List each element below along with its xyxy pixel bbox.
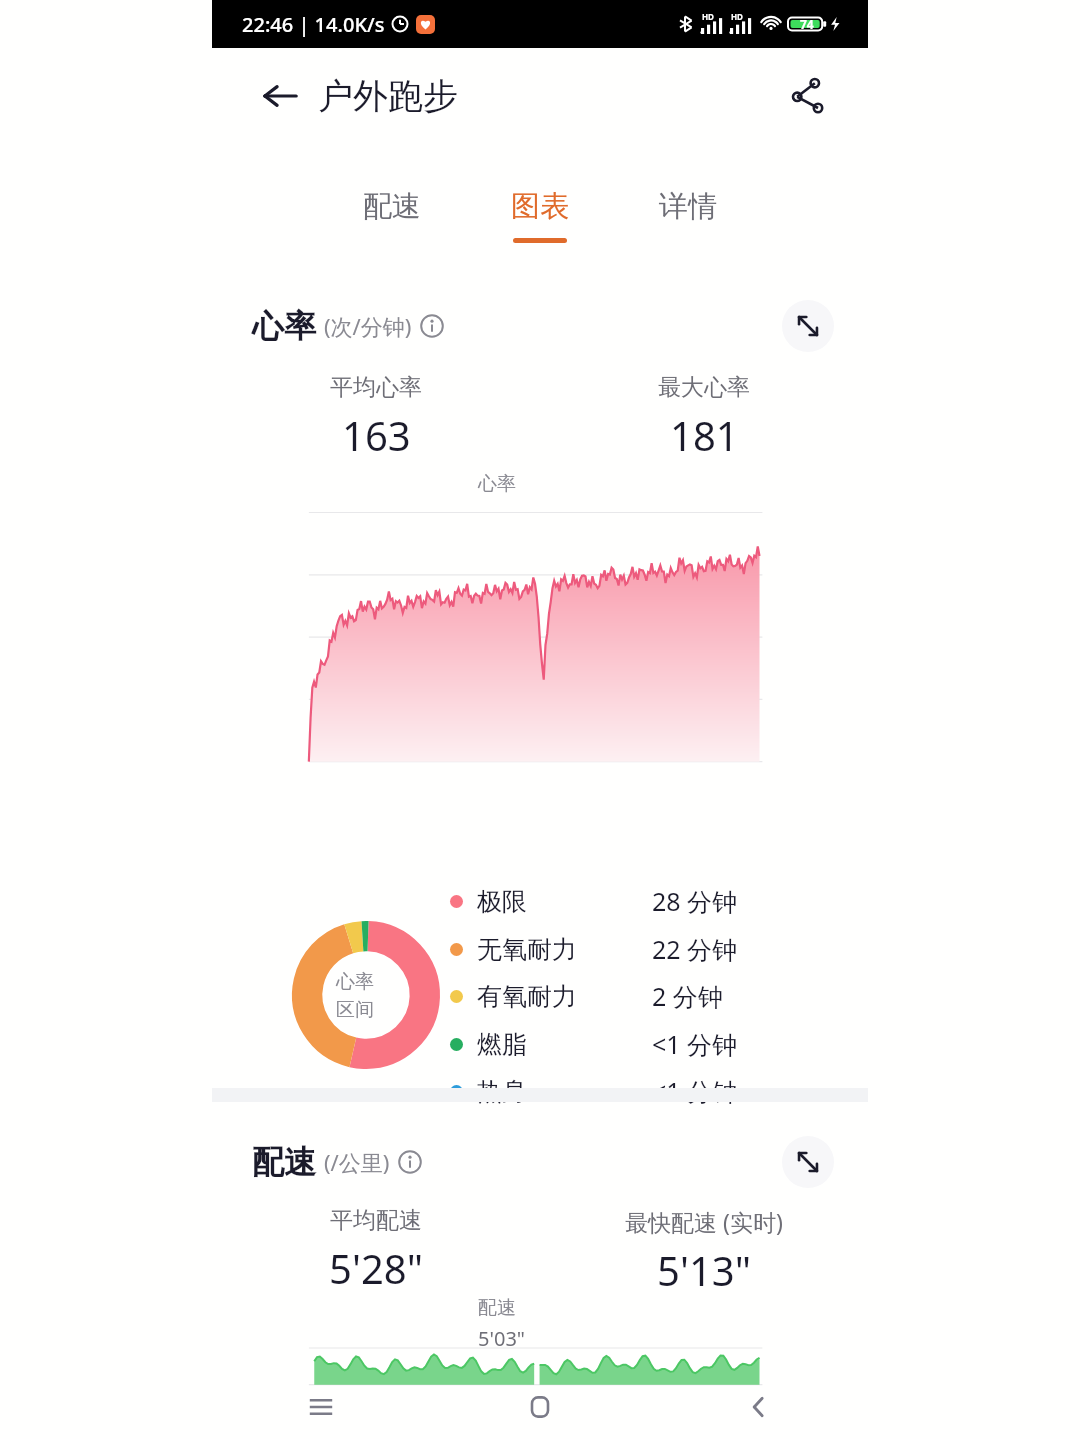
staticText: 热身 xyxy=(477,1076,527,1107)
staticText: 5'03" xyxy=(478,1325,525,1352)
button[interactable]: Expand chart xyxy=(782,300,834,352)
staticText: 22:46 | 14.0K/s xyxy=(242,11,385,38)
staticText: 区间 xyxy=(336,998,374,1022)
staticText: 配速 xyxy=(252,1142,316,1182)
button[interactable]: 有氧耐力 xyxy=(450,976,770,1016)
staticText: 户外跑步 xyxy=(318,74,458,118)
staticText: 22 分钟 xyxy=(652,932,738,966)
button[interactable]: Home xyxy=(430,1375,649,1439)
staticText: HD xyxy=(702,11,714,22)
staticText: HD xyxy=(731,11,743,22)
button[interactable]: 配速 xyxy=(337,188,447,238)
staticText: 心率 xyxy=(336,970,374,994)
button[interactable]: 热身 xyxy=(450,1071,770,1111)
staticText: 2 分钟 xyxy=(652,979,723,1013)
staticText: 28 分钟 xyxy=(652,884,738,918)
staticText: 心率 xyxy=(478,472,516,496)
staticText: <1 分钟 xyxy=(652,1074,738,1108)
button[interactable]: Back xyxy=(256,72,304,120)
button[interactable]: 燃脂 xyxy=(450,1024,770,1064)
staticText: 5'28" xyxy=(329,1241,423,1295)
staticText: 181 xyxy=(670,408,739,462)
button[interactable]: Expand chart xyxy=(782,1136,834,1188)
staticText: 平均心率 xyxy=(330,373,422,402)
button[interactable]: 详情 xyxy=(633,188,743,238)
staticText: <1 分钟 xyxy=(652,1027,738,1061)
staticText: 无氧耐力 xyxy=(477,934,577,965)
staticText: (/公里) xyxy=(324,1147,390,1177)
staticText: 163 xyxy=(342,408,411,462)
staticText: 配速 xyxy=(478,1296,516,1320)
button[interactable]: 无氧耐力 xyxy=(450,929,770,969)
staticText: 配速 xyxy=(363,188,421,225)
staticText: 极限 xyxy=(477,886,527,917)
staticText: 有氧耐力 xyxy=(477,981,577,1012)
button[interactable]: 极限 xyxy=(450,881,770,921)
staticText: 心率 xyxy=(252,306,316,346)
staticText: (次/分钟) xyxy=(324,311,412,341)
button[interactable]: 图表 xyxy=(485,188,595,243)
staticText: 最大心率 xyxy=(658,373,750,402)
staticText: 详情 xyxy=(659,188,717,225)
staticText: 74 xyxy=(800,16,814,32)
button[interactable]: Share xyxy=(780,70,832,122)
staticText: 最快配速 (实时) xyxy=(625,1206,783,1237)
button[interactable]: Recents xyxy=(212,1375,430,1439)
staticText: 平均配速 xyxy=(330,1206,422,1235)
staticText: 图表 xyxy=(511,188,569,225)
staticText: 燃脂 xyxy=(477,1029,527,1060)
staticText: 5'13" xyxy=(657,1243,751,1297)
button[interactable]: Back xyxy=(649,1375,868,1439)
